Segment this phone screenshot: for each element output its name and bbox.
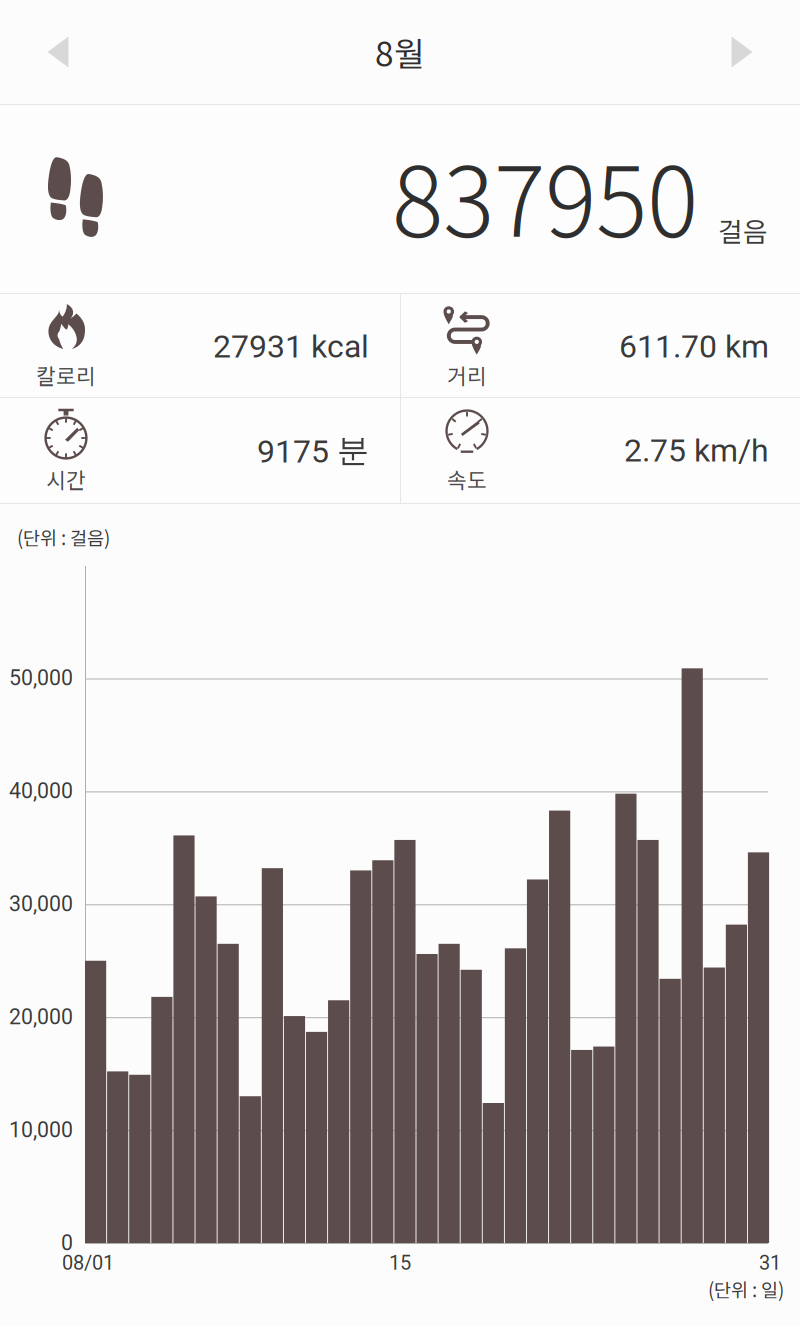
staticText: 거리 [447, 360, 487, 390]
button[interactable]: 거리 [401, 294, 800, 399]
staticText: 칼로리 [36, 360, 96, 390]
staticText: 10,000 [9, 1117, 73, 1142]
staticText: 속도 [447, 464, 487, 494]
staticText: 8월 [375, 28, 425, 76]
button[interactable]: 칼로리 [0, 294, 399, 399]
staticText: (단위 : 일) [708, 1275, 784, 1302]
staticText: 08/01 [62, 1251, 114, 1275]
button[interactable]: 시간 [0, 398, 399, 503]
staticText: 27931 kcal [213, 328, 369, 365]
button[interactable]: Previous month [3, 0, 113, 104]
staticText: 40,000 [9, 778, 73, 803]
staticText: 50,000 [9, 665, 73, 690]
staticText: 0 [61, 1230, 73, 1255]
staticText: 837950 [392, 126, 698, 265]
button[interactable]: 속도 [401, 398, 800, 503]
staticText: 30,000 [9, 891, 73, 916]
staticText: (단위 : 걸음) [17, 523, 110, 550]
staticText: 시간 [46, 464, 86, 494]
staticText: 걸음 [718, 211, 768, 249]
staticText: 31 [759, 1251, 781, 1275]
staticText: 9175 분 [257, 430, 369, 471]
staticText: 2.75 km/h [624, 432, 769, 469]
staticText: 611.70 km [619, 328, 769, 365]
staticText: 15 [389, 1251, 411, 1275]
staticText: 20,000 [9, 1004, 73, 1029]
button[interactable]: Next month [687, 0, 797, 104]
